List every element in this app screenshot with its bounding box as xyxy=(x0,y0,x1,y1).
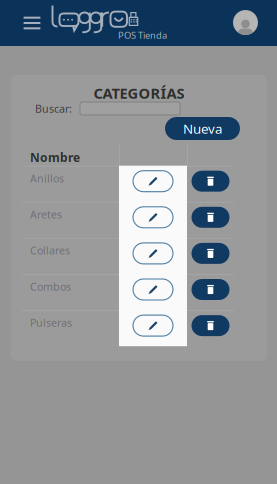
button[interactable]: Editar xyxy=(133,207,173,228)
staticText: Anillos xyxy=(30,171,64,185)
staticText: Combos xyxy=(30,279,71,294)
button[interactable]: Editar xyxy=(133,279,173,300)
button[interactable]: Editar xyxy=(133,243,173,264)
staticText: CATEGORÍAS xyxy=(93,83,184,103)
button[interactable]: Menú xyxy=(15,0,49,46)
button[interactable]: Editar xyxy=(133,171,173,192)
button[interactable]: Eliminar xyxy=(191,315,229,336)
button[interactable]: Eliminar xyxy=(191,207,229,228)
staticText: Nombre xyxy=(30,149,80,165)
staticText: Pulseras xyxy=(30,316,72,330)
button[interactable]: Eliminar xyxy=(191,279,229,300)
staticText: Aretes xyxy=(30,207,62,221)
button[interactable]: Nueva xyxy=(165,117,240,140)
button[interactable]: Editar xyxy=(133,315,173,336)
button[interactable]: Eliminar xyxy=(191,243,229,264)
staticText: POS Tienda xyxy=(118,29,167,41)
staticText: Nueva xyxy=(183,120,222,137)
staticText: Buscar: xyxy=(35,101,72,116)
staticText: Collares xyxy=(30,243,70,258)
button[interactable]: Eliminar xyxy=(191,171,229,192)
button[interactable]: Cuenta xyxy=(233,10,258,35)
